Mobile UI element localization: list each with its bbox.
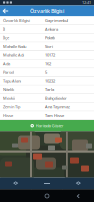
staticText: Haritada Göster (36, 123, 64, 128)
button[interactable]: Haritada Göster (0, 120, 94, 131)
staticText: Sivri (45, 44, 53, 49)
staticText: Tarla (45, 87, 54, 92)
button[interactable]: Back (0, 5, 12, 16)
staticText: Mahalle Adı (3, 52, 24, 58)
staticText: Mahalle Kodu (3, 44, 26, 49)
staticText: Özvarlık Bilgisi (30, 7, 64, 15)
staticText: Mevkii (3, 95, 15, 101)
staticText: Özvarlık Bilgisi (3, 18, 30, 23)
staticText: 162 (45, 61, 51, 66)
staticText: Tam Hisse (45, 113, 64, 118)
button[interactable]: Info (63, 177, 94, 189)
staticText: 12:41 (82, 0, 91, 5)
staticText: İlçe (3, 35, 9, 40)
staticText: Parsel (3, 70, 14, 75)
staticText: 10172 (45, 52, 55, 58)
staticText: Polatlı (45, 35, 55, 40)
staticText: Gayrimenkul (45, 18, 68, 23)
button[interactable]: Back (63, 189, 94, 202)
staticText: 5 (45, 70, 47, 75)
button[interactable]: Layers (0, 177, 31, 189)
staticText: Nitelik (3, 87, 14, 92)
staticText: 10232 (45, 78, 55, 83)
staticText: İl (3, 26, 5, 32)
button[interactable]: Measure (31, 177, 63, 189)
staticText: Bahçelievler (45, 95, 67, 101)
staticText: Ana Taşınmaz (45, 104, 70, 109)
staticText: Tapu Alanı (3, 78, 21, 83)
staticText: Hisse (3, 113, 13, 118)
staticText: Ada (3, 61, 10, 66)
staticText: Ankara (45, 26, 58, 32)
staticText: Zemin Tip (3, 104, 20, 109)
button[interactable]: Home (31, 189, 63, 202)
